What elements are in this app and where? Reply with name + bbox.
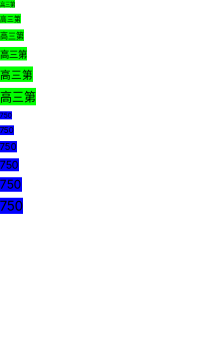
staticText: 750 xyxy=(0,177,22,192)
staticText: 高三第 xyxy=(0,14,21,23)
staticText: 750 xyxy=(0,141,17,152)
staticText: 高三第 xyxy=(0,47,27,60)
staticText: 高三第 xyxy=(0,0,15,8)
staticText: 750 xyxy=(0,198,23,214)
staticText: 高三第 xyxy=(0,66,33,82)
staticText: 高三第 xyxy=(0,29,24,41)
staticText: 高三第 xyxy=(0,88,36,105)
staticText: 750 xyxy=(0,158,19,171)
staticText: 750 xyxy=(0,111,12,119)
staticText: 750 xyxy=(0,125,14,135)
